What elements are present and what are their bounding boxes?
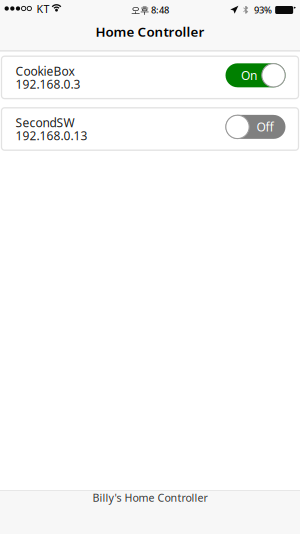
staticText: 오후 8:48 [131,4,169,16]
staticText: 93% [254,4,272,16]
staticText: Off [256,119,273,135]
staticText: 192.168.0.3 [15,76,80,92]
staticText: 192.168.0.13 [15,128,87,144]
button[interactable]: CookieBox [0,56,300,99]
staticText: Home Controller [95,23,204,40]
staticText: Billy's Home Controller [92,490,207,505]
button[interactable]: Toggle, on [225,63,285,87]
staticText: CookieBox [15,63,74,79]
staticText: KT [36,2,49,16]
staticText: On [241,67,257,83]
staticText: SecondSW [15,115,74,131]
button[interactable]: SecondSW [0,108,300,150]
button[interactable]: Toggle, off [225,115,285,139]
